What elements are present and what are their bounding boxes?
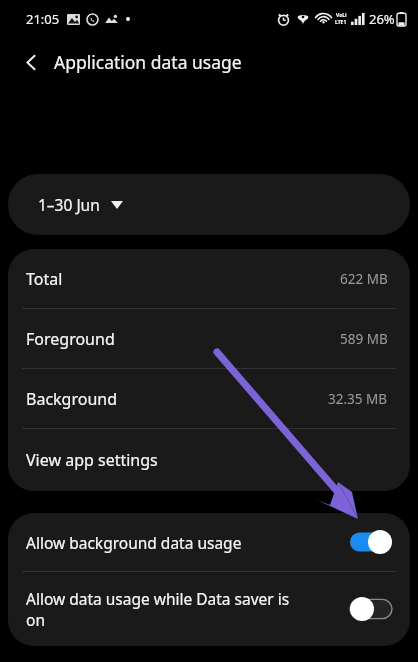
staticText: 622 MB	[340, 270, 388, 288]
staticText: Application data usage	[54, 50, 242, 74]
button[interactable]: View app settings	[8, 429, 410, 491]
staticText: 589 MB	[340, 330, 388, 348]
button[interactable]: Allow background data usage toggle, on	[350, 530, 392, 554]
staticText: 26%	[369, 10, 395, 28]
button[interactable]: Allow data usage while Data saver is on …	[350, 597, 392, 621]
staticText: VoLl	[336, 12, 347, 19]
staticText: View app settings	[26, 449, 158, 471]
button[interactable]: Back	[12, 43, 50, 81]
staticText: 32.35 MB	[328, 390, 388, 408]
button[interactable]: 1–30 Jun	[8, 174, 410, 235]
staticText: Background	[26, 388, 118, 410]
staticText: 1–30 Jun	[38, 194, 100, 215]
button[interactable]: Total	[8, 249, 410, 308]
staticText: 21:05	[26, 10, 60, 28]
button[interactable]: Background	[8, 369, 410, 428]
staticText: Total	[26, 268, 63, 290]
button[interactable]: Allow data usage while Data saver is on	[8, 572, 410, 646]
button[interactable]: Allow background data usage	[8, 513, 410, 571]
staticText: LTE1	[335, 19, 347, 26]
staticText: Foreground	[26, 328, 115, 350]
staticText: Allow background data usage	[26, 532, 242, 553]
staticText: Allow data usage while Data saver is on	[26, 588, 306, 630]
button[interactable]: Foreground	[8, 309, 410, 368]
